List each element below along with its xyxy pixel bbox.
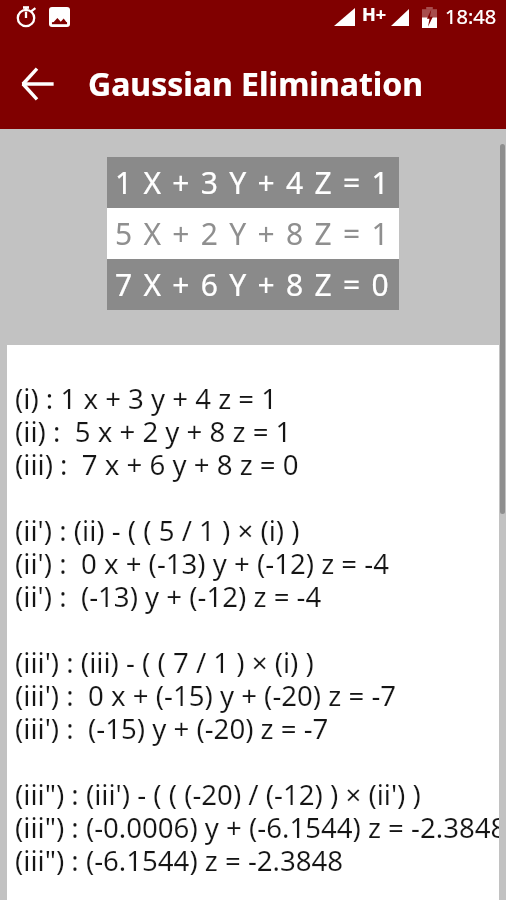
- staticText: H+: [362, 2, 387, 27]
- staticText: 18:48: [445, 3, 497, 30]
- staticText: Gaussian Elimination: [88, 62, 424, 106]
- staticText: 7 X + 6 Y + 8 Z = 0: [115, 264, 391, 305]
- staticText: (i) : 1 x + 3 y + 4 z = 1 (ii) : 5 x + 2…: [15, 379, 499, 879]
- staticText: 5 X + 2 Y + 8 Z = 1: [115, 213, 391, 254]
- other: Screenshot saved: [49, 7, 70, 27]
- button[interactable]: 1 X + 3 Y + 4 Z = 1: [107, 157, 399, 208]
- button[interactable]: 5 X + 2 Y + 8 Z = 1: [107, 208, 399, 259]
- staticText: 1 X + 3 Y + 4 Z = 1: [115, 162, 391, 203]
- button[interactable]: Navigate up: [6, 53, 68, 115]
- other: Timer running: [14, 4, 38, 28]
- other: Battery charging: [422, 7, 437, 28]
- button[interactable]: (i) : 1 x + 3 y + 4 z = 1 (ii) : 5 x + 2…: [7, 345, 499, 900]
- button[interactable]: 7 X + 6 Y + 8 Z = 0: [107, 259, 399, 310]
